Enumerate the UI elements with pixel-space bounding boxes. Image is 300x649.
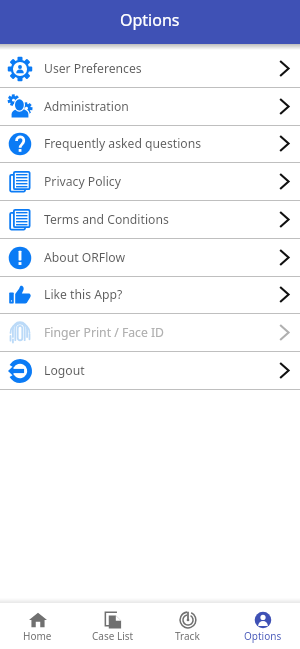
button[interactable]: User Preferences [0,50,300,88]
button[interactable]: Like this App? [0,276,300,314]
staticText: Privacy Policy [44,173,121,190]
button[interactable]: Administration [0,88,300,126]
button[interactable]: Options [225,603,300,649]
staticText: Options [120,9,180,31]
staticText: Like this App? [44,286,123,303]
staticText: Frequently asked questions [44,135,202,152]
button[interactable]: Frequently asked questions [0,125,300,163]
staticText: Track [175,629,200,643]
staticText: Logout [44,362,85,379]
staticText: About ORFlow [44,249,126,266]
staticText: Case List [92,629,134,643]
button[interactable]: Privacy Policy [0,163,300,201]
button[interactable]: Track [150,603,225,649]
button[interactable]: About ORFlow [0,239,300,277]
button[interactable]: Terms and Conditions [0,201,300,239]
button[interactable]: Logout [0,352,300,390]
staticText: Terms and Conditions [44,211,169,228]
staticText: Options [244,629,282,643]
staticText: Administration [44,98,129,115]
button[interactable]: Finger Print / Face ID [0,314,300,352]
staticText: Home [23,629,52,643]
button[interactable]: Home [0,603,75,649]
button[interactable]: Case List [75,603,150,649]
staticText: User Preferences [44,60,142,77]
staticText: Finger Print / Face ID [44,324,165,341]
